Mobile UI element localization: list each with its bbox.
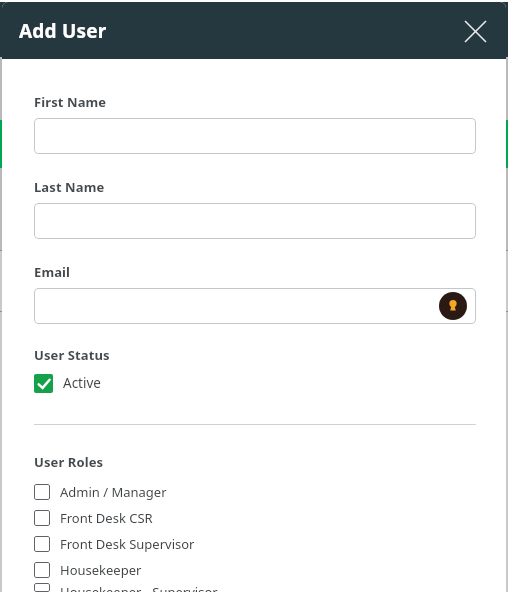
staticText: User Roles [34, 453, 104, 471]
staticText: Last Name [34, 178, 105, 196]
staticText: Front Desk CSR [60, 509, 153, 527]
button[interactable]: Saved password [34, 288, 476, 324]
staticText: First Name [34, 93, 107, 111]
staticText: User Status [34, 346, 110, 364]
staticText: Active [63, 374, 101, 392]
button[interactable]: Front Desk CSR [34, 505, 476, 531]
button[interactable]: Housekeeper [34, 557, 476, 583]
button[interactable]: Front Desk Supervisor [34, 531, 476, 557]
staticText: Front Desk Supervisor [60, 535, 195, 553]
button[interactable]: Close [458, 14, 492, 48]
staticText: Add User [19, 18, 107, 44]
staticText: Admin / Manager [60, 483, 167, 501]
button[interactable] [34, 203, 476, 239]
button[interactable]: Saved password [439, 292, 467, 320]
staticText: Email [34, 263, 71, 281]
button[interactable]: Admin / Manager [34, 479, 476, 505]
button[interactable]: Housekeeper - Supervisor [34, 583, 476, 592]
button[interactable]: Active [34, 372, 101, 394]
staticText: Housekeeper [60, 561, 142, 579]
button[interactable] [34, 118, 476, 154]
staticText: Housekeeper - Supervisor [60, 583, 218, 592]
